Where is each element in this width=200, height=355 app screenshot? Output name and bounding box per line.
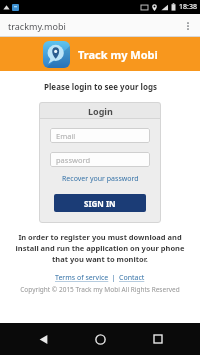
staticText: In order to register you must download a… xyxy=(7,232,193,264)
staticText: Email xyxy=(56,131,76,141)
button[interactable]: Back xyxy=(28,324,58,354)
button[interactable]: password xyxy=(50,152,150,167)
staticText: Recover your password xyxy=(62,174,139,184)
staticText: Terms of service xyxy=(55,273,109,283)
staticText: Track my Mobi xyxy=(78,47,158,62)
staticText: | xyxy=(110,273,118,283)
staticText: SIGN IN xyxy=(84,198,116,209)
button[interactable]: SIGN IN xyxy=(54,194,146,212)
button[interactable]: Recover your password xyxy=(58,173,143,185)
staticText: Please login to see your logs xyxy=(44,81,157,92)
button[interactable]: Contact xyxy=(118,273,146,283)
button[interactable]: More options xyxy=(180,18,196,34)
staticText: 18:38 xyxy=(179,2,197,12)
staticText: password xyxy=(56,155,90,165)
button[interactable]: Email xyxy=(50,128,150,143)
staticText: Login xyxy=(88,105,113,117)
button[interactable]: Terms of service xyxy=(54,273,110,283)
staticText: Contact xyxy=(119,273,145,283)
staticText: trackmy.mobi xyxy=(8,20,66,32)
button[interactable]: Recent apps xyxy=(143,324,173,354)
staticText: Copyright © 2015 Track my Mobi All Right… xyxy=(20,285,180,294)
button[interactable]: Home xyxy=(85,324,115,354)
